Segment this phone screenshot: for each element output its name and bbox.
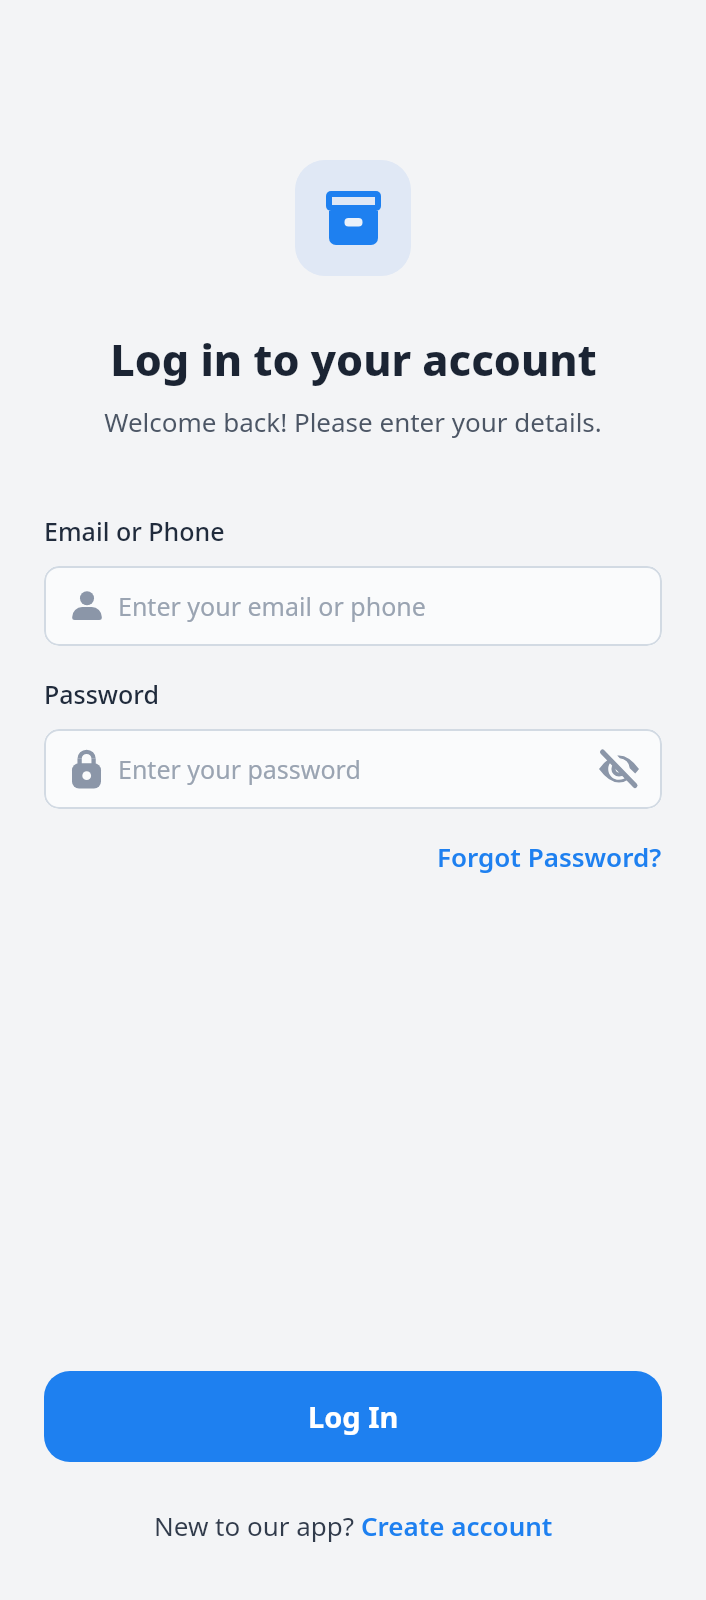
staticText: Forgot Password? bbox=[437, 839, 662, 874]
staticText: Create account bbox=[361, 1508, 553, 1543]
button[interactable]: Enter your password bbox=[44, 729, 662, 809]
staticText: New to our app? bbox=[154, 1508, 361, 1543]
staticText: Enter your email or phone bbox=[118, 589, 662, 623]
staticText: Email or Phone bbox=[44, 514, 225, 548]
staticText: Welcome back! Please enter your details. bbox=[104, 404, 602, 439]
button[interactable]: Enter your email or phone bbox=[44, 566, 662, 646]
staticText: Password bbox=[44, 677, 159, 711]
staticText: Log in to your account bbox=[110, 330, 597, 389]
button[interactable]: New to our app? bbox=[154, 1508, 553, 1543]
staticText: Enter your password bbox=[118, 752, 597, 786]
staticText: Log In bbox=[308, 1397, 399, 1436]
button[interactable]: Log In bbox=[44, 1371, 662, 1462]
button[interactable]: Forgot Password? bbox=[437, 839, 662, 874]
